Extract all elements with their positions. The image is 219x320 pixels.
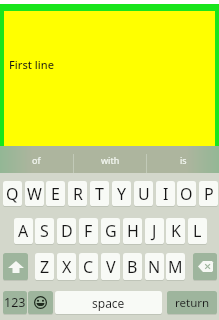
staticText: Y [117, 183, 127, 205]
staticText: F [84, 220, 93, 242]
button[interactable]: with [74, 146, 146, 173]
staticText: H [127, 220, 139, 242]
button[interactable]: P [199, 181, 218, 206]
button[interactable]: X [57, 253, 76, 280]
button[interactable]: O [177, 181, 196, 206]
button[interactable]: E [46, 181, 65, 206]
staticText: V [106, 256, 116, 278]
staticText: R [73, 183, 83, 205]
staticText: First line [9, 57, 55, 72]
staticText: M [168, 256, 183, 278]
button[interactable]: is [147, 146, 219, 173]
staticText: is [180, 154, 187, 166]
staticText: W [27, 183, 42, 205]
button[interactable]: V [101, 253, 120, 280]
button[interactable]: J [145, 218, 164, 244]
button[interactable]: Y [112, 181, 131, 206]
staticText: B [127, 256, 138, 278]
button[interactable]: Shift [3, 253, 28, 280]
button[interactable]: Backspace [193, 253, 217, 280]
staticText: O [180, 183, 193, 205]
staticText: J [152, 220, 157, 242]
staticText: G [105, 220, 117, 242]
button[interactable]: space [55, 291, 162, 314]
staticText: space [92, 295, 125, 311]
staticText: C [83, 256, 94, 278]
staticText: return [175, 295, 210, 311]
staticText: A [18, 220, 29, 242]
button[interactable]: C [79, 253, 98, 280]
button[interactable]: I [156, 181, 175, 206]
staticText: Z [40, 256, 50, 278]
button[interactable]: L [188, 218, 207, 244]
button[interactable]: A [14, 218, 33, 244]
staticText: E [51, 183, 60, 205]
button[interactable]: W [25, 181, 44, 206]
button[interactable]: F [79, 218, 98, 244]
staticText: X [62, 256, 72, 278]
button[interactable]: R [68, 181, 87, 206]
button[interactable]: return [167, 291, 217, 314]
button[interactable]: U [134, 181, 153, 206]
button[interactable]: D [57, 218, 76, 244]
staticText: K [171, 220, 181, 242]
staticText: U [138, 183, 150, 205]
staticText: I [163, 183, 169, 205]
button[interactable]: N [145, 253, 164, 280]
staticText: S [40, 220, 49, 242]
button[interactable]: Q [3, 181, 22, 206]
button[interactable]: G [101, 218, 120, 244]
button[interactable]: S [35, 218, 54, 244]
staticText: L [193, 220, 202, 242]
button[interactable]: 123 [3, 291, 27, 314]
button[interactable]: K [166, 218, 185, 244]
button[interactable]: T [90, 181, 109, 206]
button[interactable]: M [166, 253, 185, 280]
staticText: T [95, 183, 104, 205]
staticText: P [204, 183, 214, 205]
staticText: D [61, 220, 73, 242]
staticText: N [148, 256, 161, 278]
button[interactable]: Emoji [28, 291, 53, 314]
staticText: with [101, 154, 120, 166]
button[interactable]: B [123, 253, 142, 280]
button[interactable]: Z [35, 253, 54, 280]
staticText: Q [6, 183, 19, 205]
button[interactable]: H [123, 218, 142, 244]
button[interactable]: of [0, 146, 73, 173]
staticText: of [32, 154, 41, 166]
staticText: 123 [4, 294, 26, 311]
